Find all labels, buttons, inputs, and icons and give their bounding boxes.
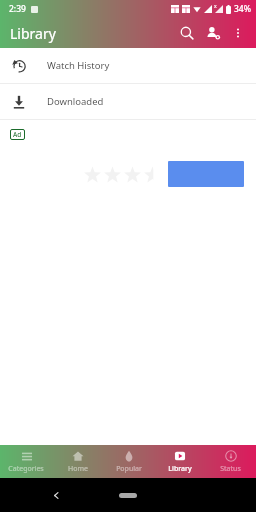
- staticText: 34%: [234, 3, 251, 15]
- button[interactable]: Watch History: [0, 48, 256, 83]
- other: Home: [119, 493, 137, 498]
- button[interactable]: Status: [205, 445, 256, 478]
- staticText: Library: [10, 24, 56, 43]
- button[interactable]: Popular: [103, 445, 154, 478]
- button[interactable]: Search: [174, 20, 200, 46]
- staticText: x: [214, 3, 217, 10]
- button[interactable]: Account: [200, 20, 226, 46]
- button[interactable]: Categories: [0, 445, 52, 478]
- staticText: Home: [68, 464, 88, 474]
- button[interactable]: Home: [52, 445, 103, 478]
- button[interactable]: Library: [154, 445, 205, 478]
- staticText: Watch History: [47, 59, 110, 72]
- staticText: Status: [220, 464, 241, 474]
- button[interactable]: Downloaded: [0, 84, 256, 119]
- button[interactable]: More options: [226, 21, 250, 45]
- staticText: Popular: [116, 464, 142, 474]
- staticText: Downloaded: [47, 95, 104, 108]
- staticText: Library: [168, 464, 192, 474]
- staticText: Categories: [8, 464, 44, 474]
- staticText: Ad: [13, 130, 22, 139]
- staticText: 2:39: [9, 3, 26, 15]
- other: Back: [52, 491, 61, 500]
